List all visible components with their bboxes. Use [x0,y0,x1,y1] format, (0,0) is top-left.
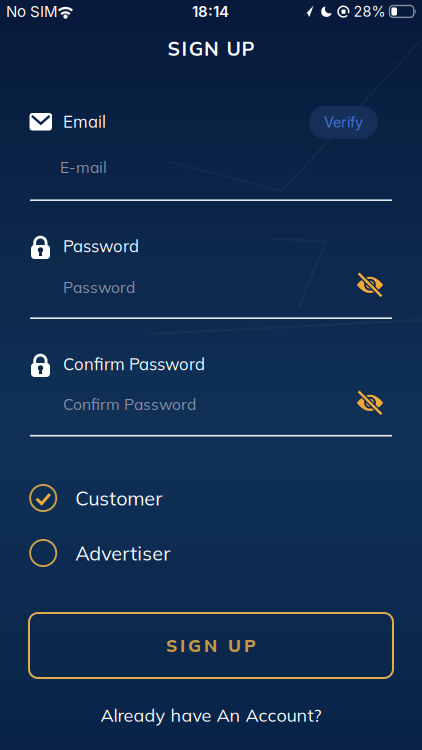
button[interactable]: Already have An Account? [100,704,321,726]
staticText: Verify [324,114,363,131]
staticText: SIGN UP [161,36,261,61]
staticText: Password [63,277,135,297]
staticText: 28% [353,3,385,20]
button[interactable]: Advertiser [29,536,249,570]
staticText: Password [63,235,139,256]
staticText: 18:14 [192,2,229,21]
staticText: Advertiser [75,541,170,565]
staticText: Email [63,111,106,132]
staticText: SIGN UP [158,635,264,656]
button[interactable]: Show password [347,262,393,308]
button[interactable]: Show confirm password [347,380,393,426]
staticText: No SIM [6,2,58,21]
button[interactable]: Verify [309,106,378,139]
staticText: E-mail [60,157,107,177]
staticText: Already have An Account? [100,704,321,726]
staticText: Confirm Password [63,394,196,414]
button[interactable]: SIGN UP [29,613,393,678]
staticText: Customer [75,486,162,510]
button[interactable]: Customer [29,481,249,515]
staticText: Confirm Password [63,353,205,374]
